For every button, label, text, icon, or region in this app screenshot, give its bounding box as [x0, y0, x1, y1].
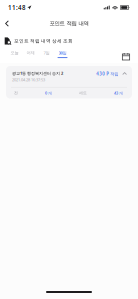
staticText: 포인트 적립 내역 상세 조회 — [14, 38, 73, 44]
staticText: 어제 — [26, 50, 34, 56]
button[interactable]: 7일 — [38, 50, 54, 63]
button[interactable]: 광교1동 행정복지센터 승지 2 — [0, 66, 138, 98]
staticText: 430 P 적립 — [96, 71, 118, 77]
staticText: 7일 — [43, 50, 49, 56]
staticText: 오늘 — [10, 50, 18, 56]
button[interactable]: Back — [0, 16, 14, 30]
staticText: 광교1동 행정복지센터 승지 2 — [12, 70, 63, 76]
staticText: 30일 — [58, 50, 66, 56]
button[interactable]: 30일 — [54, 50, 70, 63]
staticText: 11:48 — [8, 3, 26, 12]
staticText: 세트 — [79, 91, 87, 95]
staticText: 0 개 — [45, 90, 52, 96]
staticText: 전 — [14, 91, 18, 95]
button[interactable]: 어제 — [22, 50, 38, 63]
staticText: 포인트 적립 내역 — [49, 20, 88, 27]
staticText: 2021.04.28 16:37:53 — [12, 77, 45, 82]
button[interactable]: 오늘 — [6, 50, 22, 63]
staticText: 43 개 — [114, 90, 123, 96]
button[interactable]: Select date range — [120, 50, 132, 62]
